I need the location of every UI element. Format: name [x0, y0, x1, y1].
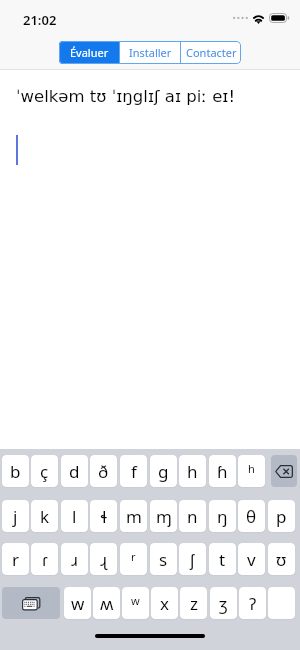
staticText: g	[158, 460, 169, 483]
staticText: ʰ	[248, 460, 255, 483]
button[interactable]: ç	[31, 455, 58, 487]
staticText: m	[126, 505, 142, 528]
button[interactable]: ʒ	[210, 587, 237, 619]
button[interactable]: p	[268, 500, 295, 532]
button[interactable]: g	[150, 455, 177, 487]
staticText: v	[247, 548, 256, 571]
button[interactable]: j	[2, 500, 29, 532]
staticText: ʍ	[100, 592, 114, 615]
button[interactable]: h	[179, 455, 206, 487]
button[interactable]: ɱ	[150, 500, 177, 532]
staticText: b	[10, 460, 21, 483]
button[interactable]: Switch keyboard	[2, 587, 60, 619]
button[interactable]: θ	[238, 500, 265, 532]
staticText: ʃ	[190, 548, 195, 571]
button[interactable]: l	[61, 500, 88, 532]
button[interactable]: s	[150, 543, 177, 575]
button[interactable]: k	[31, 500, 58, 532]
staticText: j	[13, 505, 18, 528]
staticText: ʳ	[131, 548, 136, 571]
staticText: ɦ	[217, 460, 228, 483]
button[interactable]: ʳ	[120, 543, 147, 575]
button[interactable]: n	[179, 500, 206, 532]
staticText: ʊ	[276, 548, 287, 571]
staticText: x	[160, 592, 169, 615]
button[interactable]: ɬ	[90, 500, 117, 532]
button[interactable]: ʔ	[239, 587, 266, 619]
staticText: ɻ	[100, 548, 108, 571]
button[interactable]: ɻ	[90, 543, 117, 575]
button[interactable]: ʊ	[268, 543, 295, 575]
button[interactable]: ʍ	[93, 587, 120, 619]
staticText: h	[187, 460, 198, 483]
staticText: d	[69, 460, 80, 483]
staticText: ð	[98, 460, 109, 483]
button[interactable]: x	[151, 587, 178, 619]
staticText: ɱ	[156, 505, 172, 528]
staticText: ɾ	[42, 548, 48, 571]
button[interactable]: ʰ	[238, 455, 265, 487]
button[interactable]: w	[64, 587, 91, 619]
button[interactable]: z	[180, 587, 207, 619]
button[interactable]: Backspace	[271, 455, 297, 487]
staticText: Évaluer	[70, 45, 109, 60]
staticText: ʒ	[219, 592, 228, 615]
button[interactable]: ʷ	[122, 587, 149, 619]
button[interactable]: r	[2, 543, 29, 575]
button[interactable]: m	[120, 500, 147, 532]
button[interactable]: d	[61, 455, 88, 487]
staticText: ˈwelkəm tʊ ˈɪŋglɪʃ aɪ piː eɪ!	[16, 87, 236, 106]
button[interactable]: ɹ	[61, 543, 88, 575]
staticText: f	[131, 460, 137, 483]
button[interactable]: ʃ	[179, 543, 206, 575]
button[interactable]: b	[2, 455, 29, 487]
button[interactable]: Évaluer	[59, 41, 119, 64]
staticText: p	[276, 505, 287, 528]
button[interactable]: f	[120, 455, 147, 487]
staticText: n	[187, 505, 198, 528]
button[interactable]: ŋ	[209, 500, 236, 532]
button[interactable]: Installer	[120, 41, 180, 64]
button[interactable]	[268, 587, 295, 619]
staticText: ɬ	[101, 505, 107, 528]
staticText: l	[72, 505, 77, 528]
staticText: Installer	[129, 45, 172, 60]
staticText: z	[190, 592, 198, 615]
button[interactable]: t	[209, 543, 236, 575]
staticText: w	[71, 592, 85, 615]
button[interactable]: ð	[90, 455, 117, 487]
staticText: s	[159, 548, 168, 571]
staticText: t	[219, 548, 226, 571]
button[interactable]: Contacter	[181, 41, 241, 64]
staticText: k	[40, 505, 50, 528]
button[interactable]: ɾ	[31, 543, 58, 575]
staticText: ʔ	[249, 592, 257, 615]
staticText: ç	[40, 460, 49, 483]
staticText: 21:02	[23, 11, 57, 29]
staticText: ʷ	[131, 592, 140, 615]
staticText: ɹ	[71, 548, 79, 571]
button[interactable]: v	[238, 543, 265, 575]
staticText: Contacter	[186, 45, 237, 60]
button[interactable]: ɦ	[209, 455, 236, 487]
staticText: θ	[246, 505, 257, 528]
staticText: ŋ	[217, 505, 228, 528]
staticText: r	[12, 548, 20, 571]
